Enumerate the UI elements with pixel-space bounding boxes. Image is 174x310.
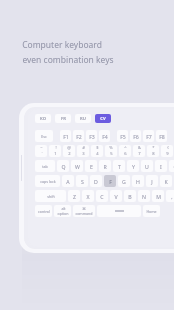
staticText: I — [160, 163, 162, 170]
staticText: T — [118, 163, 121, 170]
button[interactable]: % — [105, 145, 117, 157]
button[interactable]: J — [146, 175, 158, 187]
staticText: Home — [146, 209, 157, 214]
staticText: ( — [167, 145, 169, 151]
staticText: Computer keyboard — [22, 39, 102, 51]
button[interactable]: RU — [75, 114, 91, 123]
staticText: F4 — [102, 133, 108, 140]
staticText: O — [173, 163, 174, 170]
button[interactable]: Space — [97, 205, 141, 217]
button[interactable]: $ — [91, 145, 103, 157]
staticText: 5 — [110, 151, 113, 157]
button[interactable]: C — [96, 190, 108, 202]
staticText: V — [114, 193, 118, 200]
button[interactable]: W — [71, 160, 83, 172]
button[interactable]: Y — [127, 160, 139, 172]
button[interactable]: E — [85, 160, 97, 172]
button[interactable]: Home — [143, 205, 160, 217]
staticText: W — [75, 163, 80, 170]
staticText: F2 — [76, 133, 82, 140]
button[interactable]: F6 — [130, 130, 141, 142]
button[interactable]: A — [62, 175, 74, 187]
button[interactable]: * — [147, 145, 159, 157]
button[interactable]: H — [132, 175, 144, 187]
staticText: C — [100, 193, 104, 200]
button[interactable]: ( — [161, 145, 173, 157]
staticText: G — [122, 178, 126, 185]
staticText: 9 — [166, 151, 169, 157]
button[interactable]: K — [160, 175, 172, 187]
button[interactable]: control — [35, 205, 52, 217]
staticText: E — [90, 163, 93, 170]
staticText: S — [81, 178, 84, 185]
button[interactable]: F2 — [73, 130, 84, 142]
staticText: A — [66, 178, 70, 185]
staticText: B — [128, 193, 132, 200]
button[interactable]: D — [90, 175, 102, 187]
staticText: F8 — [159, 133, 165, 140]
button[interactable]: F4 — [99, 130, 110, 142]
button[interactable]: shift — [35, 190, 66, 202]
staticText: 3 — [82, 151, 85, 157]
button[interactable]: O — [169, 160, 174, 172]
staticText: R — [103, 163, 107, 170]
button[interactable]: ~ — [35, 145, 47, 157]
staticText: shift — [47, 194, 55, 199]
button[interactable]: tab — [35, 160, 55, 172]
staticText: F6 — [133, 133, 139, 140]
staticText: , — [171, 193, 173, 200]
staticText: even combination keys — [22, 54, 114, 66]
button[interactable]: KO — [35, 114, 51, 123]
button[interactable]: U — [141, 160, 153, 172]
button[interactable]: X — [82, 190, 94, 202]
staticText: alt — [61, 206, 66, 211]
button[interactable]: F5 — [117, 130, 128, 142]
button[interactable]: M — [152, 190, 164, 202]
button[interactable]: G — [118, 175, 130, 187]
button[interactable]: F7 — [143, 130, 154, 142]
staticText: ` — [41, 151, 43, 157]
staticText: tab — [42, 164, 48, 169]
staticText: Esc — [41, 134, 47, 139]
staticText: H — [136, 178, 140, 185]
staticText: Q — [61, 163, 66, 170]
button[interactable]: T — [113, 160, 125, 172]
staticText: caps lock — [40, 179, 56, 184]
button[interactable]: F — [104, 175, 116, 187]
button[interactable]: , — [166, 190, 174, 202]
staticText: F1 — [63, 133, 69, 140]
staticText: 8 — [152, 151, 155, 157]
button[interactable]: @ — [63, 145, 75, 157]
button[interactable]: # — [77, 145, 89, 157]
staticText: * — [152, 145, 155, 151]
button[interactable]: CV — [95, 114, 111, 123]
staticText: # — [82, 145, 85, 151]
button[interactable]: Esc — [35, 130, 53, 142]
button[interactable]: B — [124, 190, 136, 202]
button[interactable]: ^ — [119, 145, 131, 157]
button[interactable]: FR — [55, 114, 71, 123]
button[interactable]: Z — [68, 190, 80, 202]
staticText: 6 — [124, 151, 127, 157]
staticText: Y — [132, 163, 135, 170]
button[interactable]: alt — [54, 205, 71, 217]
staticText: J — [151, 178, 153, 185]
button[interactable]: & — [133, 145, 145, 157]
staticText: option — [57, 211, 69, 216]
button[interactable]: ⌘ — [73, 205, 95, 217]
staticText: 4 — [96, 151, 99, 157]
staticText: F3 — [89, 133, 95, 140]
staticText: FR — [61, 116, 66, 122]
button[interactable]: R — [99, 160, 111, 172]
button[interactable]: S — [76, 175, 88, 187]
staticText: D — [94, 178, 98, 185]
button[interactable]: I — [155, 160, 167, 172]
button[interactable]: F1 — [60, 130, 71, 142]
button[interactable]: N — [138, 190, 150, 202]
button[interactable]: F3 — [86, 130, 97, 142]
button[interactable]: F8 — [156, 130, 167, 142]
button[interactable]: caps lock — [35, 175, 60, 187]
button[interactable]: Q — [57, 160, 69, 172]
button[interactable]: ! — [49, 145, 61, 157]
button[interactable]: V — [110, 190, 122, 202]
